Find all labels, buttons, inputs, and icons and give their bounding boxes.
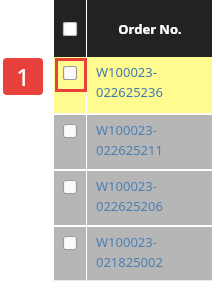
button[interactable]: Step 1 — [3, 58, 43, 95]
staticText: Order No. — [118, 20, 182, 38]
button[interactable]: Select order W100023-022625211 — [54, 115, 86, 169]
staticText: 022625211 — [96, 141, 163, 159]
button[interactable]: Select order W100023-022625211 — [54, 115, 212, 169]
staticText: W100023- — [96, 121, 157, 139]
staticText: 021825002 — [96, 253, 163, 271]
button[interactable]: Select order W100023-022625206 — [54, 171, 212, 225]
staticText: 1 — [16, 60, 30, 93]
button[interactable]: Select order W100023-022625206 — [54, 171, 86, 225]
button[interactable]: Select order W100023-022625236 — [54, 57, 212, 113]
staticText: 022625236 — [96, 83, 163, 101]
staticText: 022625206 — [96, 197, 163, 215]
button[interactable]: Select order W100023-022625236 — [54, 57, 86, 113]
staticText: W100023- — [96, 177, 157, 195]
button[interactable]: Order No. — [87, 0, 212, 57]
staticText: W100023- — [96, 63, 157, 81]
button[interactable]: Select order W100023-021825002 — [54, 227, 212, 280]
button[interactable]: Select order W100023-021825002 — [54, 227, 86, 280]
button[interactable]: Select all orders — [54, 0, 86, 57]
staticText: W100023- — [96, 233, 157, 251]
